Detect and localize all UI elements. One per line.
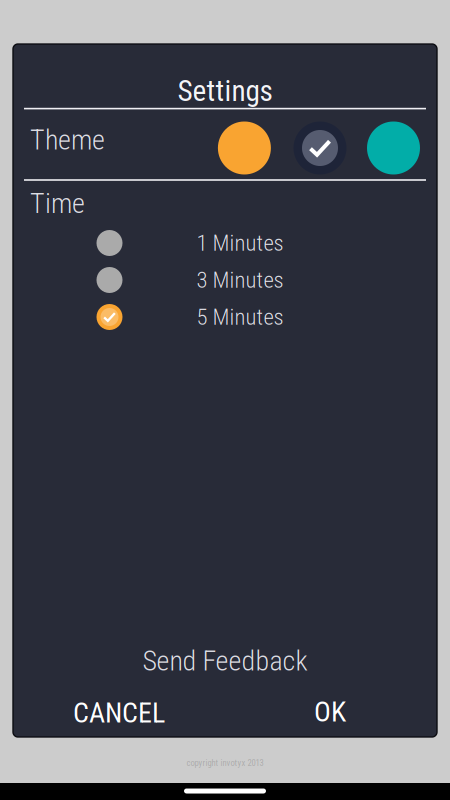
staticText: 3 Minutes [196, 267, 283, 293]
button[interactable]: 3 Minutes [96, 261, 346, 298]
staticText: Settings [177, 74, 272, 108]
button[interactable]: CANCEL [39, 692, 199, 734]
staticText: CANCEL [73, 697, 165, 729]
staticText: 5 Minutes [196, 304, 283, 330]
staticText: copyright invotyx 2013 [186, 758, 263, 768]
button[interactable]: Orange theme [218, 121, 271, 174]
button[interactable]: 5 Minutes [96, 298, 346, 335]
staticText: Theme [30, 124, 105, 156]
button[interactable]: Dark theme, selected [293, 121, 346, 174]
staticText: OK [314, 696, 346, 728]
staticText: Send Feedback [142, 645, 307, 677]
staticText: 1 Minutes [196, 230, 283, 256]
button[interactable]: OK [275, 691, 385, 733]
button[interactable]: Teal theme [367, 121, 420, 174]
button[interactable]: Send Feedback [13, 643, 437, 679]
staticText: Time [30, 187, 85, 220]
button[interactable]: 1 Minutes [96, 224, 346, 261]
